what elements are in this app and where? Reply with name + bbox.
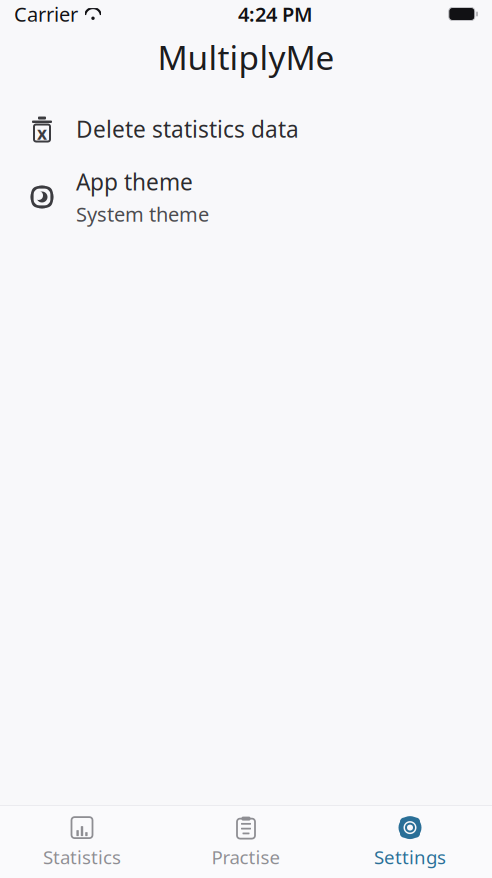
button[interactable]: Practise bbox=[164, 810, 328, 874]
button[interactable]: x bbox=[0, 98, 492, 160]
staticText: x bbox=[37, 121, 47, 144]
button[interactable]: App theme bbox=[0, 160, 492, 234]
button[interactable]: Statistics bbox=[0, 810, 164, 874]
staticText: System theme bbox=[76, 201, 209, 227]
staticText: Delete statistics data bbox=[76, 114, 299, 144]
staticText: MultiplyMe bbox=[157, 35, 334, 79]
staticText: Carrier bbox=[14, 1, 78, 27]
staticText: Practise bbox=[211, 845, 280, 869]
staticText: App theme bbox=[76, 167, 193, 197]
button[interactable]: Settings bbox=[328, 810, 492, 874]
staticText: Statistics bbox=[43, 845, 121, 869]
staticText: Settings bbox=[374, 845, 446, 869]
staticText: 4:24 PM bbox=[238, 1, 313, 27]
